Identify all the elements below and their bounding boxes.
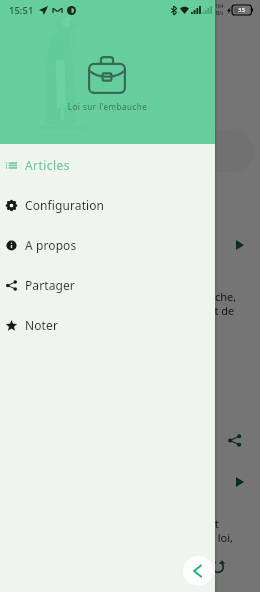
button[interactable]: Noter xyxy=(0,305,215,345)
staticText: les droits et les obligations de chacun … xyxy=(12,303,235,318)
button[interactable]: Partager xyxy=(0,265,215,305)
button[interactable]: Play xyxy=(236,240,244,250)
staticText: Loi sur l'embauche xyxy=(0,101,215,112)
staticText: Article 1 : Champ d'application xyxy=(12,239,172,254)
button[interactable] xyxy=(6,131,254,172)
staticText: Configuration xyxy=(25,197,105,213)
staticText: 15:51 xyxy=(9,4,34,17)
staticText: les employeurs et les travailleurs, en xyxy=(12,275,200,290)
button[interactable]: A propos xyxy=(0,225,215,265)
staticText: Partager xyxy=(25,277,75,293)
staticText: 35 xyxy=(238,6,245,14)
staticText: ce qui concerne les conditions d'embauch… xyxy=(12,289,237,304)
staticText: Toute personne a le droit de travailler … xyxy=(12,516,219,531)
button[interactable]: Configuration xyxy=(0,185,215,225)
staticText: Les dispositions de la presente loi reg xyxy=(12,247,206,262)
staticText: d'exercer un emploi de son choix, selon … xyxy=(12,530,233,545)
button[interactable]: Articles xyxy=(0,145,215,185)
button[interactable]: Share xyxy=(228,434,241,447)
staticText: B/s xyxy=(216,10,224,17)
staticText: Articles xyxy=(25,157,71,173)
staticText: Loi sur l'embauche - main-oeuvre xyxy=(52,89,193,101)
button[interactable]: Refresh xyxy=(203,552,232,581)
button[interactable]: Back xyxy=(183,556,213,586)
staticText: 164 xyxy=(215,3,224,10)
staticText: A propos xyxy=(25,237,77,253)
staticText: Noter xyxy=(25,317,58,333)
button[interactable]: Play xyxy=(236,477,244,487)
